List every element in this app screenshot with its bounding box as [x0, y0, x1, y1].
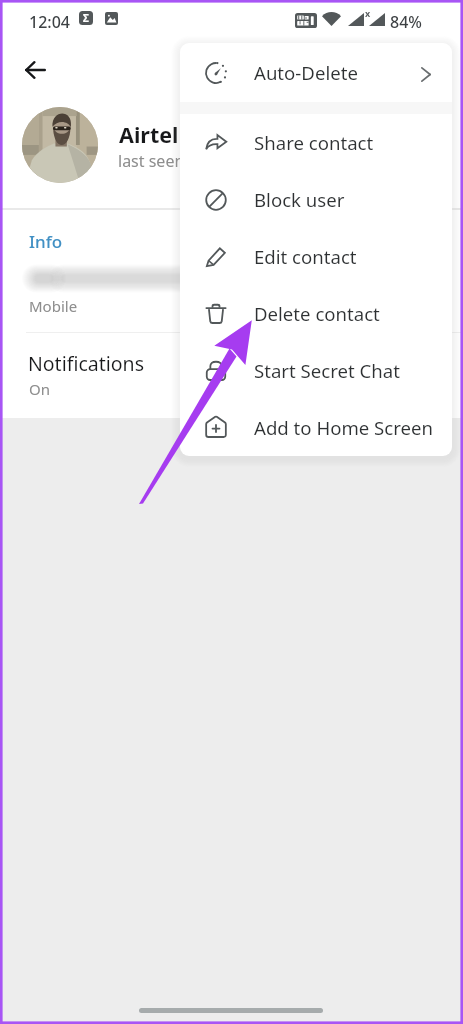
staticText: Add to Home Screen [254, 415, 434, 440]
staticText: Info [29, 230, 63, 253]
staticText: Airtel [119, 120, 179, 149]
staticText: 84% [390, 11, 422, 33]
staticText: Delete contact [254, 301, 380, 326]
button[interactable]: Start Secret Chat [180, 342, 452, 399]
staticText: Start Secret Chat [254, 358, 400, 383]
staticText: Edit contact [254, 244, 357, 269]
staticText: On [29, 379, 50, 399]
staticText: Block user [254, 187, 345, 212]
staticText: last seen recently [118, 150, 249, 172]
button[interactable]: Edit contact [180, 228, 452, 285]
staticText: Notifications [28, 350, 144, 377]
staticText: x [365, 7, 371, 19]
button[interactable]: Share contact [180, 114, 452, 171]
staticText: Mobile [29, 296, 78, 316]
button[interactable]: Block user [180, 171, 452, 228]
button[interactable]: Auto-Delete [180, 43, 452, 102]
staticText: Auto-Delete [254, 60, 358, 85]
button[interactable]: Back [14, 49, 56, 91]
staticText: Σ [83, 11, 89, 25]
button[interactable]: Delete contact [180, 285, 452, 342]
button[interactable]: Add to Home Screen [180, 399, 452, 456]
button[interactable]: Profile photo [22, 107, 98, 183]
staticText: 12:04 [29, 11, 70, 33]
staticText: Share contact [254, 130, 374, 155]
